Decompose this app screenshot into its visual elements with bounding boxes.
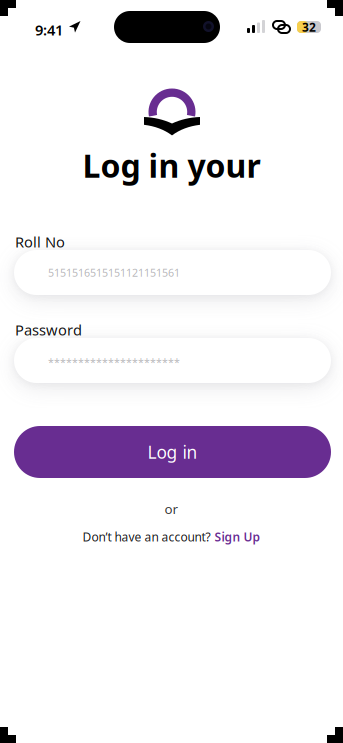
staticText: or [164,500,178,518]
staticText: 5151516515151121151561 [48,265,180,280]
button[interactable]: Sign Up [214,529,260,545]
staticText: Log in your [82,144,260,186]
button[interactable]: Log in [14,426,331,478]
staticText: Roll No [15,232,65,251]
staticText: 32 [302,19,316,35]
staticText: Don’t have an account? [82,529,210,545]
staticText: 9:41 [35,20,63,39]
staticText: Log in [147,440,197,463]
staticText: Password [15,320,82,339]
staticText: ********************** [48,355,180,369]
staticText: Sign Up [214,529,260,545]
